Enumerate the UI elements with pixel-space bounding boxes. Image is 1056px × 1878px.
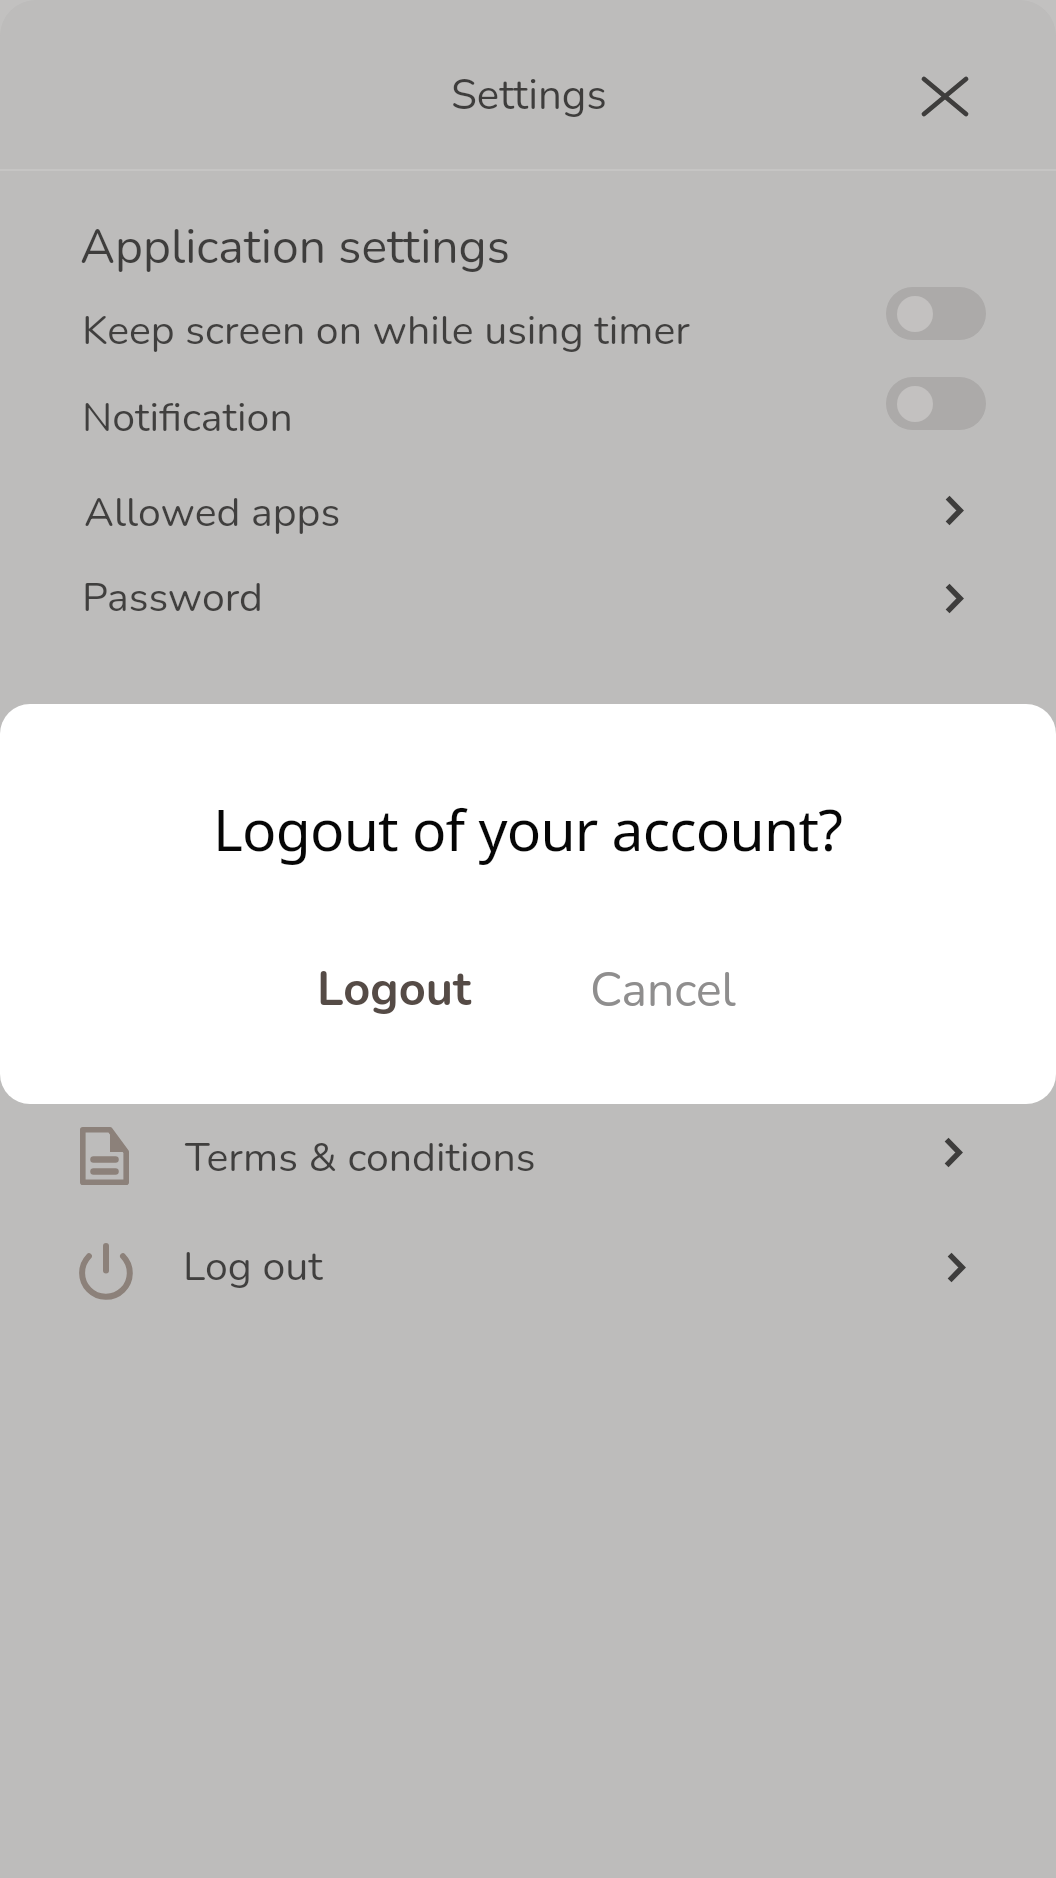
button[interactable]: Cancel xyxy=(567,944,759,1034)
button[interactable]: Log out xyxy=(0,1216,1056,1316)
button[interactable]: Keep screen on while using timer xyxy=(886,287,986,340)
staticText: Logout of your account? xyxy=(213,790,843,868)
button[interactable]: Password xyxy=(0,552,1056,632)
staticText: Log out xyxy=(183,1239,323,1295)
staticText: Notification xyxy=(82,390,293,446)
button[interactable]: Close xyxy=(898,54,992,138)
staticText: Application settings xyxy=(80,214,510,279)
staticText: Cancel xyxy=(590,957,736,1022)
staticText: Keep screen on while using timer xyxy=(82,303,690,359)
button[interactable]: Logout xyxy=(295,944,493,1034)
staticText: Password xyxy=(82,570,264,626)
button[interactable]: Keep screen on while using timer xyxy=(0,282,1056,350)
staticText: Logout xyxy=(317,957,471,1021)
button[interactable]: Allowed apps xyxy=(0,466,1056,546)
button[interactable]: Terms & conditions xyxy=(0,1108,1056,1208)
button[interactable]: Notification xyxy=(886,377,986,430)
staticText: Settings xyxy=(451,67,607,124)
button[interactable]: Notification xyxy=(0,370,1056,438)
staticText: Allowed apps xyxy=(84,485,341,541)
staticText: Terms & conditions xyxy=(185,1130,536,1186)
